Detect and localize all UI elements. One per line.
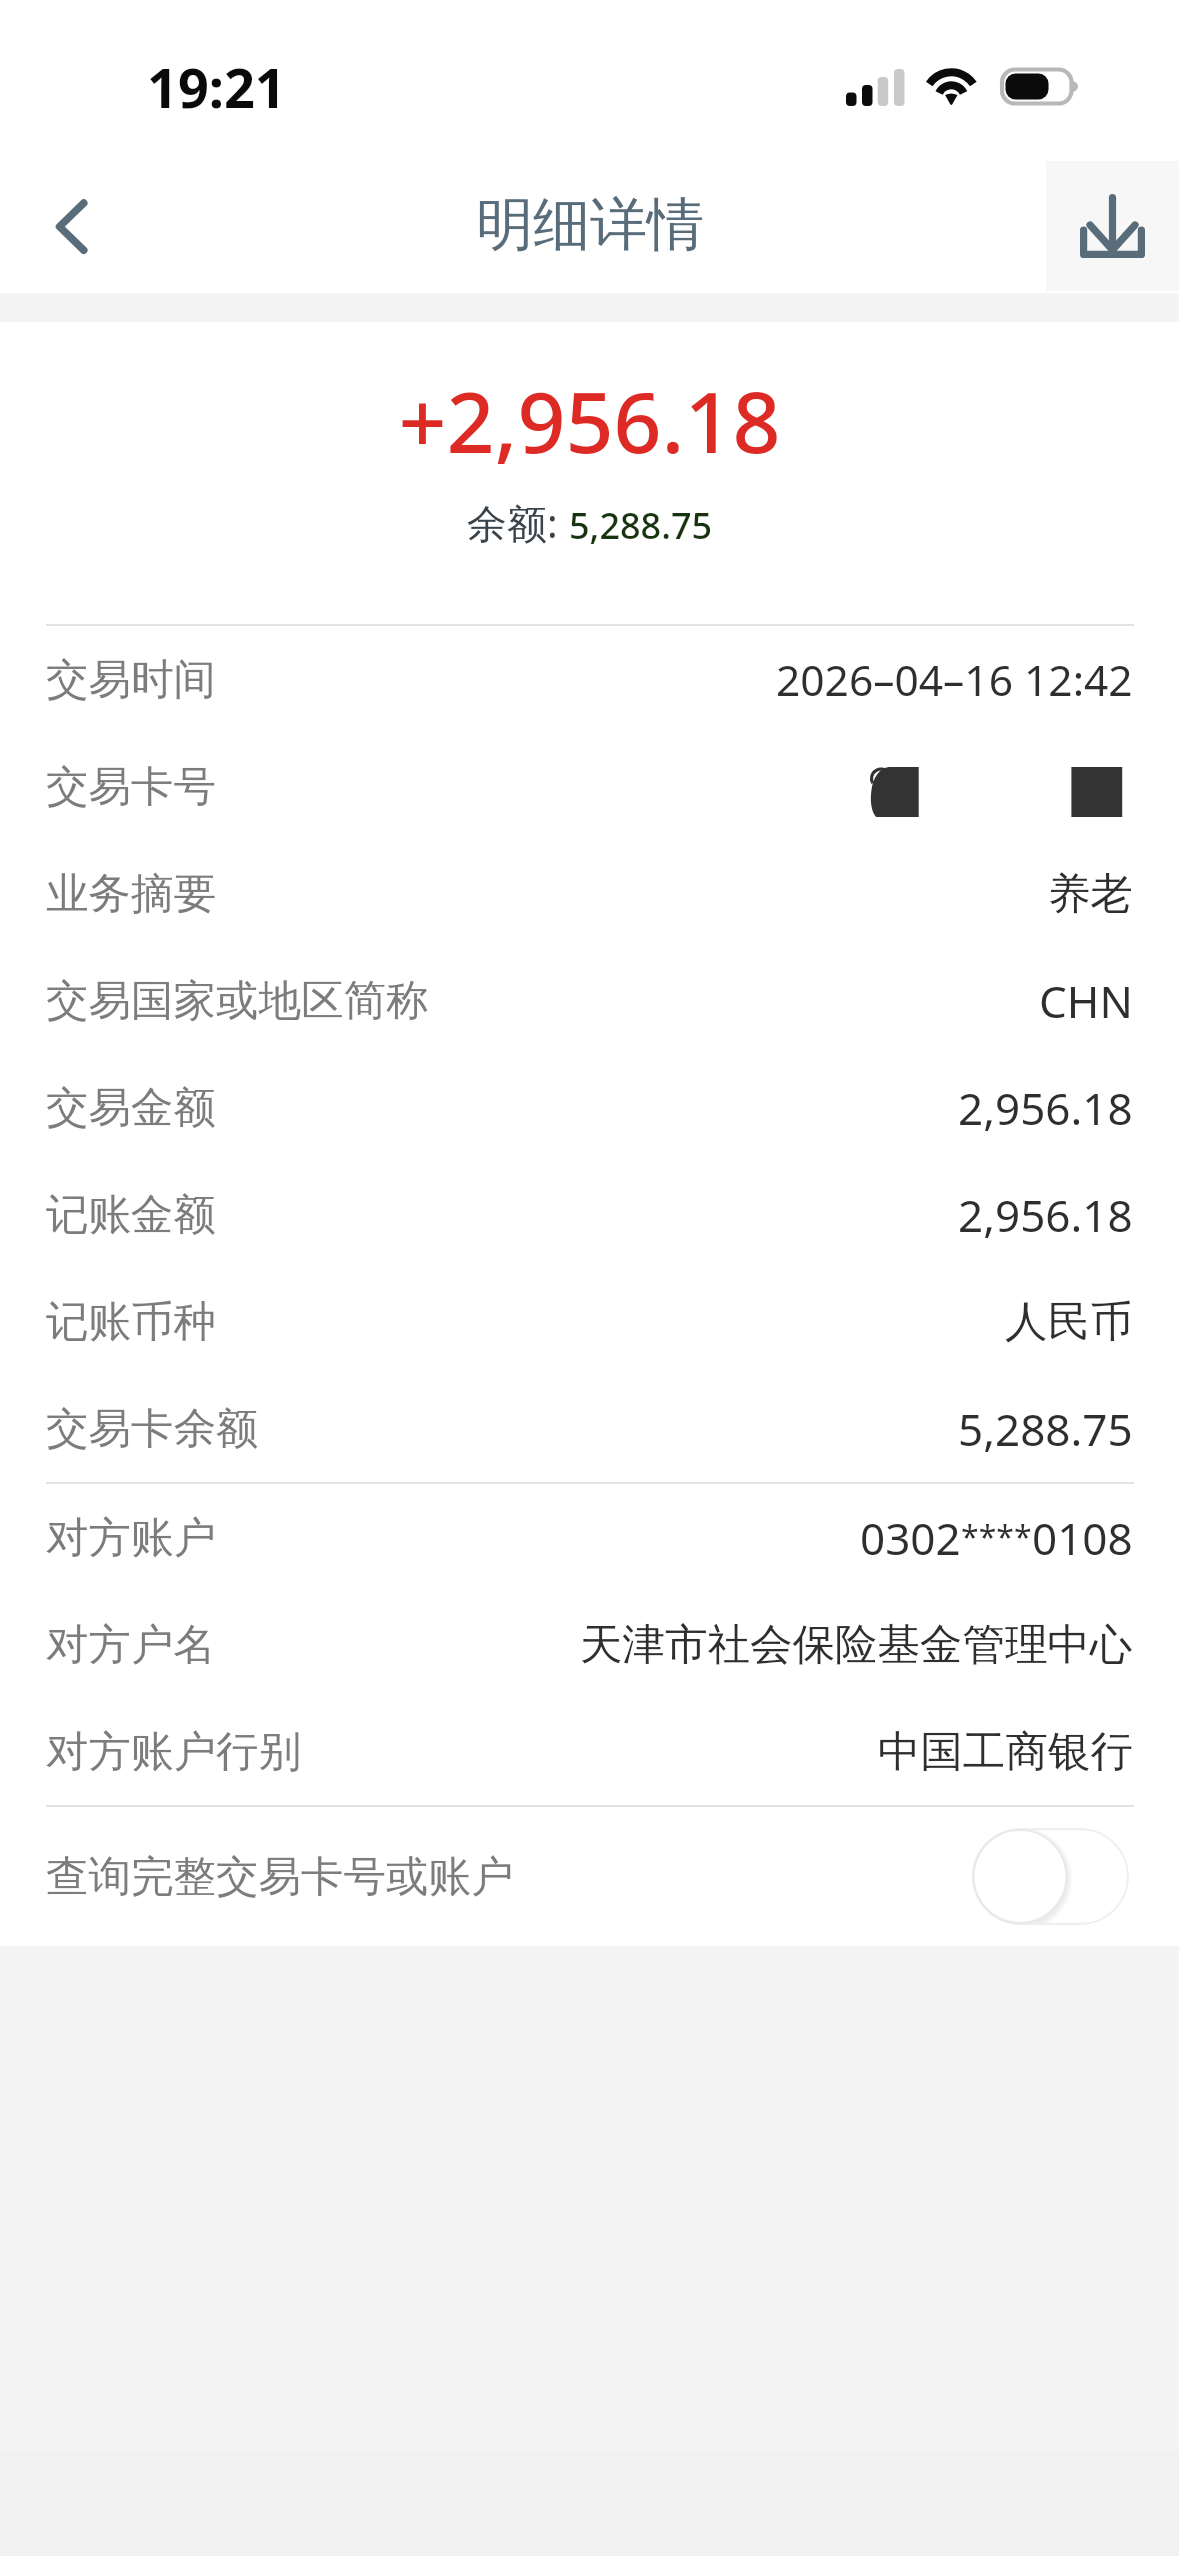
staticText: 交易国家或地区简称 [46,974,429,1028]
staticText: 5,288.75 [569,501,713,550]
button[interactable]: Download [1046,161,1179,291]
button[interactable]: 业务摘要 [0,840,1179,947]
staticText: +2,956.18 [0,363,1179,477]
button[interactable]: 交易国家或地区简称 [0,947,1179,1054]
staticText: 19:21 [147,50,286,124]
button[interactable]: 对方账户 [0,1484,1179,1591]
staticText: 业务摘要 [46,867,216,921]
button[interactable]: Back [0,145,130,293]
button[interactable]: 记账币种 [0,1268,1179,1375]
staticText: 2026–04–16 12:42 [776,651,1133,709]
staticText: 交易金额 [46,1081,216,1135]
button[interactable]: 对方账户行别 [0,1698,1179,1805]
button[interactable]: 交易卡余额 [0,1375,1179,1482]
staticText: 对方账户行别 [46,1725,301,1779]
staticText: 明细详情 [476,189,704,261]
staticText: 余额: [467,495,569,550]
button[interactable]: 交易卡号 [0,733,1179,840]
staticText: 交易卡余额 [46,1402,259,1456]
staticText: **** [961,1515,1032,1559]
staticText: 养老 [1048,867,1133,921]
button[interactable]: 记账金额 [0,1161,1179,1268]
button[interactable]: 对方户名 [0,1591,1179,1698]
staticText: 0302 [860,1508,961,1568]
staticText: 2,956.18 [958,1185,1133,1245]
staticText: 0108 [1032,1508,1133,1568]
staticText: 记账币种 [46,1295,216,1349]
staticText: 天津市社会保险基金管理中心 [580,1618,1133,1672]
staticText: 交易卡号 [46,760,216,814]
staticText: CHN [1039,971,1133,1031]
staticText: 查询完整交易卡号或账户 [46,1850,514,1904]
button[interactable]: 查询完整交易卡号或账户 [0,1807,1179,1946]
button[interactable]: Show full card number [972,1828,1129,1925]
staticText: 中国工商银行 [878,1725,1133,1779]
button[interactable]: 交易时间 [0,626,1179,733]
staticText: 记账金额 [46,1188,216,1242]
staticText: 人民币 [1005,1295,1133,1349]
staticText: 2,956.18 [958,1078,1133,1138]
staticText: 对方账户 [46,1511,216,1565]
staticText: 交易时间 [46,653,216,707]
staticText: 5,288.75 [958,1399,1133,1459]
staticText: 对方户名 [46,1618,216,1672]
button[interactable]: 交易金额 [0,1054,1179,1161]
